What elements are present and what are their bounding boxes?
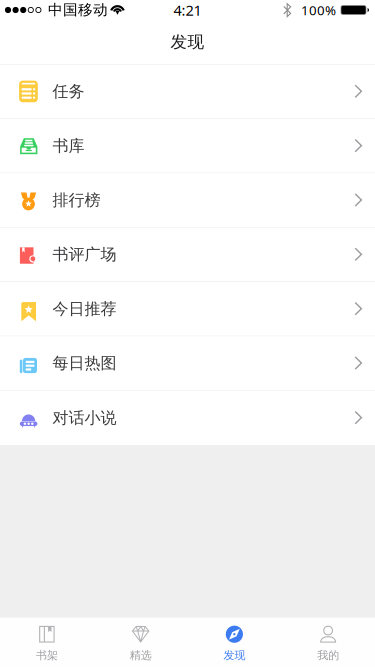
staticText: 排行榜 — [52, 190, 100, 210]
button[interactable]: 我的 — [281, 618, 375, 666]
staticText: 我的 — [317, 648, 339, 662]
staticText: 今日推荐 — [52, 299, 116, 319]
staticText: 4:21 — [173, 0, 201, 20]
button[interactable]: 书库 — [0, 119, 375, 173]
button[interactable]: 排行榜 — [0, 173, 375, 228]
staticText: 书架 — [36, 648, 58, 662]
button[interactable]: 每日热图 — [0, 336, 375, 391]
button[interactable]: 对话小说 — [0, 391, 375, 445]
staticText: 每日热图 — [52, 353, 116, 373]
button[interactable]: 精选 — [94, 618, 188, 666]
staticText: 中国移动 — [48, 1, 108, 19]
staticText: 书库 — [52, 136, 84, 156]
staticText: 精选 — [130, 648, 152, 662]
staticText: 书评广场 — [52, 244, 116, 265]
button[interactable]: 书架 — [0, 618, 94, 666]
button[interactable]: 今日推荐 — [0, 282, 375, 336]
staticText: 100% — [301, 1, 336, 19]
staticText: 发现 — [170, 31, 204, 52]
staticText: 任务 — [52, 81, 84, 102]
button[interactable]: 书评广场 — [0, 228, 375, 282]
staticText: 对话小说 — [52, 408, 116, 428]
button[interactable]: 任务 — [0, 65, 375, 119]
button[interactable]: 发现 — [187, 618, 281, 666]
staticText: 发现 — [223, 648, 245, 662]
